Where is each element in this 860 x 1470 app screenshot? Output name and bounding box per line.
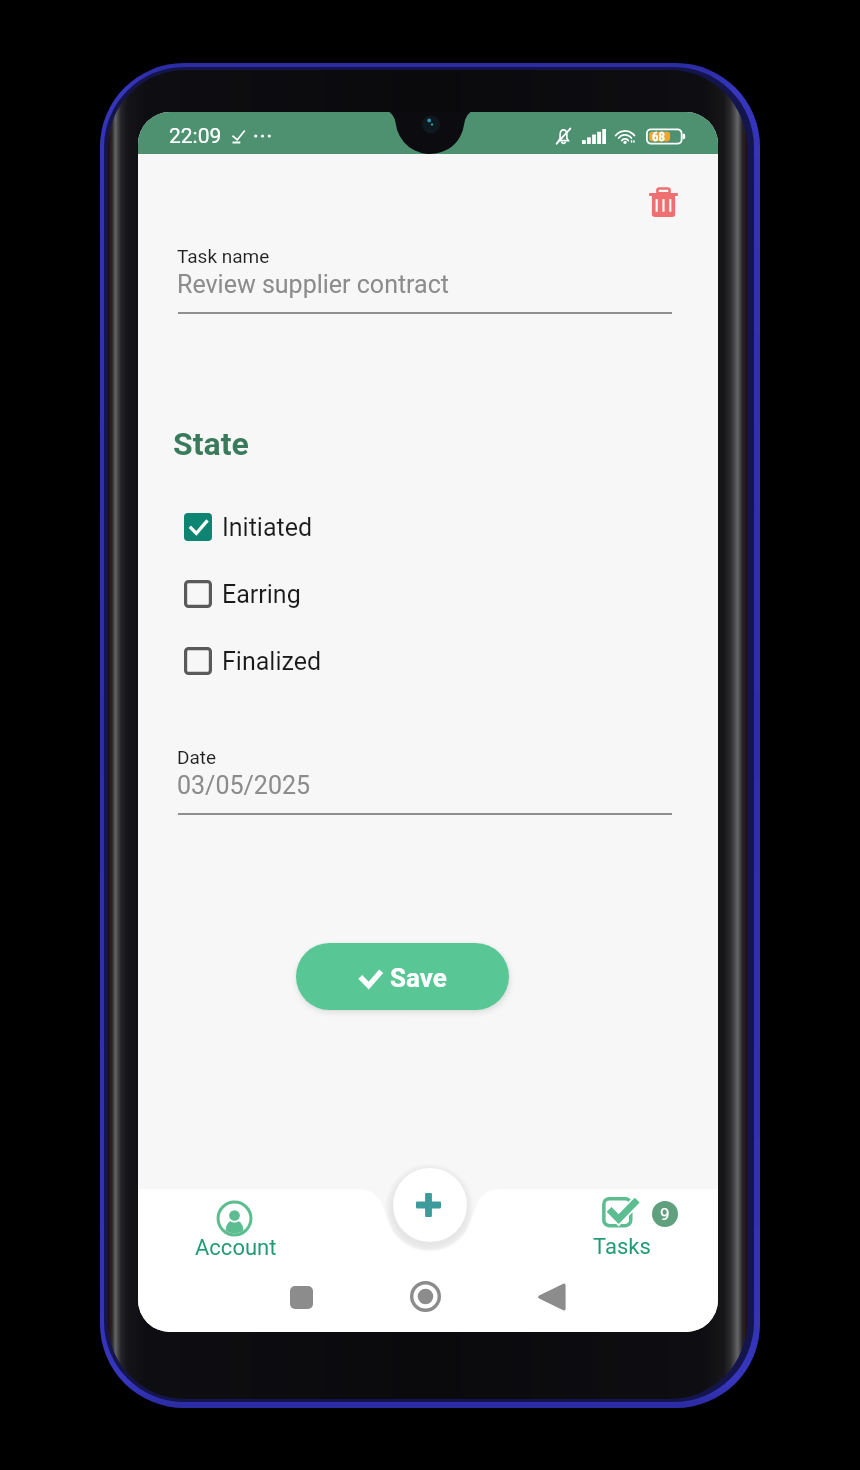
staticText: Date [177,746,217,768]
button[interactable]: Recent apps [278,1274,325,1321]
button[interactable]: Task name [176,239,674,317]
staticText: Tasks [593,1234,651,1260]
button[interactable]: Back [529,1273,576,1320]
button[interactable]: Account [169,1194,300,1264]
staticText: 03/05/2025 [177,771,311,800]
button[interactable]: Delete task [635,174,691,230]
staticText: Earring [222,580,301,609]
button[interactable]: Finalized [178,638,478,684]
button[interactable]: Earring [178,571,478,617]
staticText: Save [390,963,447,993]
staticText: Finalized [222,647,322,676]
staticText: Review supplier contract [177,270,449,299]
staticText: Task name [177,245,270,267]
staticText: 9 [660,1204,670,1224]
staticText: State [173,425,249,463]
button[interactable]: Date [176,740,674,818]
button[interactable]: Home [402,1273,449,1320]
button[interactable]: 9 [570,1194,688,1264]
staticText: 22:09 [169,124,222,149]
staticText: Initiated [222,513,313,542]
staticText: 68 [652,129,665,144]
staticText: Account [195,1235,277,1261]
button[interactable]: Initiated [178,504,478,550]
button[interactable]: Add task [393,1168,467,1242]
button[interactable]: Save [296,943,509,1010]
